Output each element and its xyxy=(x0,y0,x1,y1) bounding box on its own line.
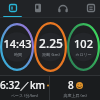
button[interactable]: Phone xyxy=(25,0,50,18)
staticText: 6:32／km xyxy=(0,78,45,92)
staticText: 距離 (km) xyxy=(42,52,60,57)
button[interactable]: 6:32／km xyxy=(0,75,49,100)
button[interactable]: More xyxy=(75,0,100,18)
button[interactable]: Activity xyxy=(0,0,25,18)
staticText: ペース (分/km) xyxy=(11,93,38,98)
staticText: カロリー xyxy=(75,52,92,57)
staticText: 2.25 xyxy=(39,35,63,51)
button[interactable]: 102 xyxy=(67,18,100,75)
button[interactable]: Headphones xyxy=(50,0,75,18)
staticText: 時間 xyxy=(14,52,22,57)
staticText: 8 xyxy=(68,78,74,92)
staticText: 高度上昇 (m) xyxy=(63,93,87,98)
staticText: 102 xyxy=(74,36,93,51)
staticText: 14:43 xyxy=(3,36,32,51)
button[interactable]: 14:43 xyxy=(0,18,34,75)
button[interactable]: 2.25 xyxy=(34,18,67,75)
button[interactable]: 8 xyxy=(50,75,100,100)
